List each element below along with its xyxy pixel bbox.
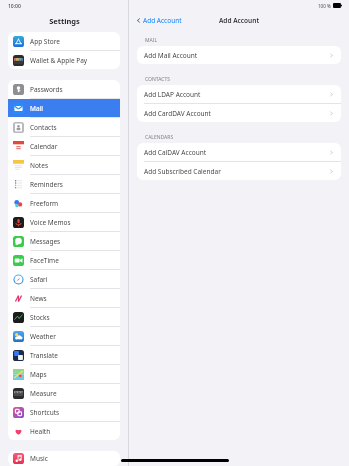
staticText: Safari: [30, 275, 48, 284]
button[interactable]: Wallet & Apple Pay: [8, 51, 120, 69]
staticText: Calendar: [30, 142, 58, 151]
staticText: Add Subscribed Calendar: [144, 167, 221, 176]
button[interactable]: Music: [8, 451, 120, 466]
staticText: Add Mail Account: [144, 51, 198, 60]
staticText: Maps: [30, 370, 47, 379]
staticText: Reminders: [30, 180, 63, 189]
button[interactable]: Measure: [8, 384, 120, 402]
button[interactable]: Add Subscribed Calendar: [137, 162, 341, 180]
button[interactable]: Add Mail Account: [137, 46, 341, 64]
button[interactable]: Notes: [8, 156, 120, 174]
button[interactable]: App Store: [8, 32, 120, 50]
button[interactable]: Translate: [8, 346, 120, 364]
staticText: CALENDARS: [145, 134, 174, 141]
staticText: FaceTime: [30, 256, 59, 265]
button[interactable]: Add LDAP Account: [137, 85, 341, 103]
staticText: Weather: [30, 332, 56, 341]
button[interactable]: Reminders: [8, 175, 120, 193]
staticText: Add CalDAV Account: [144, 148, 207, 157]
button[interactable]: Shortcuts: [8, 403, 120, 421]
button[interactable]: Passwords: [8, 80, 120, 98]
staticText: Voice Memos: [30, 218, 71, 227]
button[interactable]: Health: [8, 422, 120, 440]
staticText: Measure: [30, 389, 57, 398]
staticText: News: [30, 294, 47, 303]
staticText: Stocks: [30, 313, 50, 322]
staticText: Contacts: [30, 123, 57, 132]
staticText: Translate: [30, 351, 58, 360]
staticText: Shortcuts: [30, 408, 60, 417]
staticText: Add Account: [219, 16, 260, 25]
button[interactable]: Calendar: [8, 137, 120, 155]
button[interactable]: Contacts: [8, 118, 120, 136]
staticText: Mail: [30, 104, 43, 113]
button[interactable]: Back to Add Account: [134, 14, 184, 27]
button[interactable]: Freeform: [8, 194, 120, 212]
staticText: Add CardDAV Account: [144, 109, 211, 118]
button[interactable]: Add CardDAV Account: [137, 104, 341, 122]
staticText: Settings: [49, 16, 80, 26]
button[interactable]: FaceTime: [8, 251, 120, 269]
staticText: Passwords: [30, 85, 63, 94]
staticText: CONTACTS: [145, 76, 170, 83]
staticText: Add LDAP Account: [144, 90, 201, 99]
staticText: MAIL: [145, 37, 158, 44]
button[interactable]: Stocks: [8, 308, 120, 326]
button[interactable]: Weather: [8, 327, 120, 345]
button[interactable]: Add CalDAV Account: [137, 143, 341, 161]
staticText: Health: [30, 427, 51, 436]
staticText: Add Account: [143, 16, 182, 25]
staticText: Messages: [30, 237, 61, 246]
button[interactable]: Messages: [8, 232, 120, 250]
staticText: Wallet & Apple Pay: [30, 56, 88, 65]
button[interactable]: News: [8, 289, 120, 307]
button[interactable]: Mail: [8, 99, 120, 117]
button[interactable]: Maps: [8, 365, 120, 383]
staticText: Freeform: [30, 199, 59, 208]
staticText: Notes: [30, 161, 48, 170]
staticText: Music: [30, 454, 48, 463]
staticText: 10:00: [8, 3, 21, 10]
staticText: 100 %: [318, 3, 331, 9]
staticText: App Store: [30, 37, 60, 46]
button[interactable]: Safari: [8, 270, 120, 288]
button[interactable]: Voice Memos: [8, 213, 120, 231]
